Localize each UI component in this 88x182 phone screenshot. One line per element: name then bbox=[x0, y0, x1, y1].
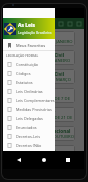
button[interactable]: Action bbox=[74, 19, 83, 28]
staticText: Constituição bbox=[16, 62, 39, 67]
button[interactable]: Código Penal Militar bbox=[6, 107, 75, 122]
staticText: Legislação Brasileira bbox=[18, 30, 52, 35]
staticText: Meus Favoritos bbox=[16, 43, 46, 48]
button[interactable]: Home bbox=[36, 152, 52, 168]
button[interactable]: As Leis bbox=[3, 18, 55, 39]
staticText: Medidas Provisórias bbox=[16, 107, 52, 112]
staticText: Código de Processo Civil bbox=[9, 52, 65, 58]
staticText: LEI Nº 8.078, DE 11 DE SETEMBRO DE 1990 bbox=[9, 153, 75, 159]
staticText: Decretos-Leis bbox=[16, 134, 41, 139]
button[interactable]: Medidas Provisórias bbox=[3, 105, 55, 114]
button[interactable]: Decretos (Não Numerados) bbox=[3, 141, 55, 150]
staticText: Código de Processo Civil bbox=[9, 71, 65, 77]
button[interactable]: Action bbox=[65, 19, 74, 28]
button[interactable]: Meus Favoritos bbox=[3, 40, 55, 50]
staticText: Leis Complementares bbox=[16, 98, 55, 103]
button[interactable]: Código Civil bbox=[6, 31, 75, 46]
button[interactable]: Códigos bbox=[3, 69, 55, 78]
button[interactable]: Estatutos bbox=[3, 78, 55, 87]
button[interactable]: Constituição bbox=[3, 60, 55, 69]
staticText: LEI Nº 5.869, DE 11 DE JANEIRO DE 1973 bbox=[9, 58, 75, 64]
button[interactable]: Back bbox=[11, 152, 27, 168]
button[interactable]: Leis Complementares bbox=[3, 96, 55, 105]
staticText: Código Penal Militar bbox=[9, 109, 56, 115]
staticText: DECRETO-LEI Nº 1.001, DE 21 DE OUTUBRO D… bbox=[9, 115, 75, 121]
staticText: Leis Delegadas bbox=[16, 116, 43, 121]
staticText: Códigos bbox=[16, 71, 31, 76]
button[interactable]: Código de Defesa do Consumidor bbox=[6, 145, 75, 160]
button[interactable]: Decretos-Leis bbox=[3, 132, 55, 141]
staticText: LEI Nº 5.172, DE 25 DE OUTUBRO DE 1966 bbox=[9, 134, 75, 140]
staticText: DECRETO-LEI Nº 2.848, DE 7 DE DEZEMBRO D… bbox=[9, 96, 75, 102]
staticText: As Leis bbox=[18, 22, 36, 29]
staticText: Código Penal bbox=[9, 90, 39, 96]
staticText: Leis Ordinárias bbox=[16, 89, 43, 94]
staticText: LEGISLAÇÃO FEDERAL bbox=[6, 54, 39, 58]
button[interactable]: Leis Ordinárias bbox=[3, 87, 55, 96]
button[interactable]: Enunciados bbox=[3, 123, 55, 132]
staticText: Código de Defesa do Consumidor bbox=[9, 147, 75, 153]
staticText: LEI Nº 13.105, DE 16 DE MARÇO DE 2015 bbox=[9, 77, 75, 83]
button[interactable]: Código Penal bbox=[6, 88, 75, 103]
staticText: Decretos (Não Numerados) bbox=[16, 143, 55, 148]
button[interactable]: Código Tributário Nacional bbox=[6, 126, 75, 141]
button[interactable]: Leis Delegadas bbox=[3, 114, 55, 123]
staticText: Código Tributário Nacional bbox=[9, 128, 71, 134]
staticText: LEI Nº 10.406, DE 10 DE JANEIRO DE 2002 bbox=[9, 39, 75, 45]
staticText: Enunciados bbox=[16, 125, 37, 130]
button[interactable]: Action bbox=[56, 19, 65, 28]
button[interactable]: Código de Processo Civil bbox=[6, 50, 75, 65]
button[interactable]: Código de Processo Civil bbox=[6, 69, 75, 84]
button[interactable]: Recents bbox=[60, 152, 76, 168]
staticText: Código Civil bbox=[9, 33, 36, 39]
staticText: Estatutos bbox=[16, 80, 33, 85]
